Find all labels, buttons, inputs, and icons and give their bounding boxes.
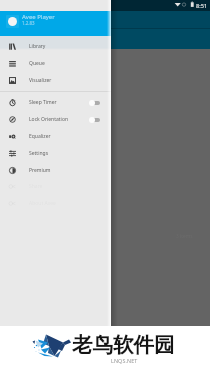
staticText: Sleep Timer bbox=[29, 99, 57, 106]
staticText: Premium bbox=[29, 167, 51, 174]
staticText: 1.2.83 bbox=[22, 20, 35, 26]
staticText: Library bbox=[29, 43, 46, 50]
button[interactable]: Sleep Timer bbox=[0, 94, 111, 111]
staticText: Visualizer bbox=[29, 77, 52, 84]
staticText: Queue bbox=[29, 60, 45, 67]
button[interactable]: Equalizer bbox=[0, 128, 111, 145]
button[interactable]: Premium bbox=[0, 162, 111, 179]
button[interactable]: Visualizer bbox=[0, 72, 111, 89]
button[interactable]: Queue bbox=[0, 55, 111, 72]
staticText: Lock Orientation bbox=[29, 116, 69, 123]
staticText: Avee Player bbox=[22, 13, 55, 21]
staticText: Equalizer bbox=[29, 133, 51, 140]
button[interactable] bbox=[0, 11, 111, 36]
button[interactable]: Library bbox=[0, 38, 111, 55]
staticText: Settings bbox=[29, 150, 49, 157]
button[interactable]: Settings bbox=[0, 145, 111, 162]
staticText: 8:51 bbox=[196, 2, 208, 10]
button[interactable]: Lock Orientation bbox=[0, 111, 111, 128]
staticText: 老鸟软件园 bbox=[72, 332, 175, 358]
staticText: LNQS.NET bbox=[111, 357, 138, 364]
